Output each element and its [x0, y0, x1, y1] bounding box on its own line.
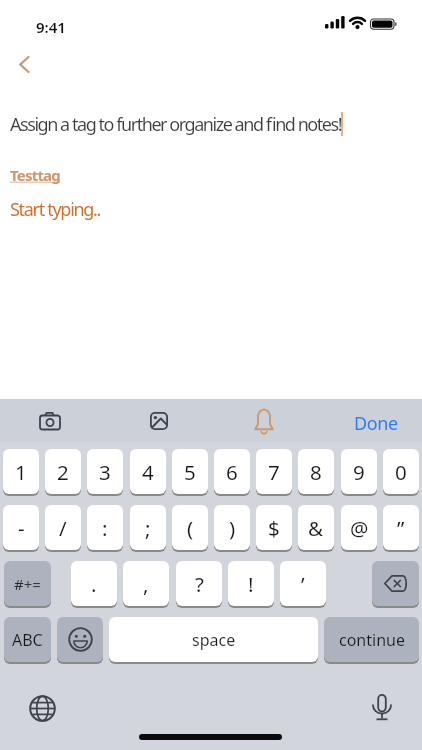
button[interactable]: 0 — [383, 449, 419, 494]
button[interactable]: continue — [324, 617, 419, 662]
button[interactable]: ? — [176, 561, 222, 606]
button[interactable]: #+= — [4, 561, 51, 606]
staticText: ? — [195, 570, 204, 598]
staticText: ( — [187, 514, 194, 542]
button[interactable]: @ — [341, 505, 377, 550]
staticText: continue — [339, 629, 405, 651]
staticText: 0 — [395, 458, 407, 486]
button[interactable]: 5 — [172, 449, 208, 494]
staticText: & — [308, 514, 324, 542]
button[interactable] — [372, 561, 419, 606]
button[interactable]: Testtag — [10, 165, 60, 185]
staticText: ” — [397, 514, 405, 542]
staticText: . — [91, 570, 97, 598]
staticText: 9:41 — [36, 17, 66, 37]
staticText: ) — [229, 514, 236, 542]
button[interactable]: ) — [214, 505, 250, 550]
button[interactable]: 3 — [87, 449, 123, 494]
button[interactable] — [8, 48, 40, 80]
button[interactable] — [30, 401, 70, 441]
staticText: - — [18, 514, 25, 542]
button[interactable]: 8 — [298, 449, 334, 494]
staticText: 8 — [310, 458, 322, 486]
staticText: $ — [268, 514, 280, 542]
staticText: / — [59, 514, 67, 542]
button[interactable]: - — [3, 505, 39, 550]
button[interactable]: . — [71, 561, 117, 606]
button[interactable] — [244, 401, 284, 441]
staticText: , — [143, 570, 149, 598]
staticText: 7 — [268, 458, 280, 486]
button[interactable]: 1 — [3, 449, 39, 494]
button[interactable]: 7 — [256, 449, 292, 494]
staticText: ; — [145, 514, 151, 542]
staticText: 3 — [99, 458, 111, 486]
staticText: ABC — [12, 629, 43, 651]
staticText: @ — [350, 514, 369, 542]
button[interactable]: ! — [228, 561, 274, 606]
staticText: 4 — [142, 458, 154, 486]
button[interactable]: 9 — [341, 449, 377, 494]
staticText: : — [102, 514, 108, 542]
button[interactable]: 6 — [214, 449, 250, 494]
button[interactable]: ABC — [4, 617, 51, 662]
button[interactable]: space — [109, 617, 318, 662]
staticText: 6 — [226, 458, 238, 486]
button[interactable]: & — [298, 505, 334, 550]
button[interactable]: , — [123, 561, 169, 606]
staticText: 2 — [57, 458, 69, 486]
button[interactable]: ; — [130, 505, 166, 550]
button[interactable] — [57, 617, 103, 662]
button[interactable] — [139, 401, 179, 441]
button[interactable] — [362, 688, 402, 728]
button[interactable]: ( — [172, 505, 208, 550]
staticText: #+= — [14, 574, 41, 594]
button[interactable]: / — [45, 505, 81, 550]
button[interactable]: ’ — [280, 561, 326, 606]
button[interactable]: 4 — [130, 449, 166, 494]
button[interactable]: ” — [383, 505, 419, 550]
staticText: 9 — [353, 458, 365, 486]
button[interactable]: : — [87, 505, 123, 550]
staticText: space — [192, 629, 236, 651]
button[interactable] — [22, 688, 62, 728]
staticText: 5 — [184, 458, 196, 486]
staticText: 1 — [15, 458, 27, 486]
staticText: ’ — [301, 570, 305, 598]
staticText: Assign a tag to further organize and fin… — [10, 112, 342, 137]
button[interactable]: Done — [354, 411, 398, 436]
staticText: ! — [248, 570, 254, 598]
staticText: Start typing.. — [10, 197, 101, 222]
button[interactable]: $ — [256, 505, 292, 550]
button[interactable]: 2 — [45, 449, 81, 494]
